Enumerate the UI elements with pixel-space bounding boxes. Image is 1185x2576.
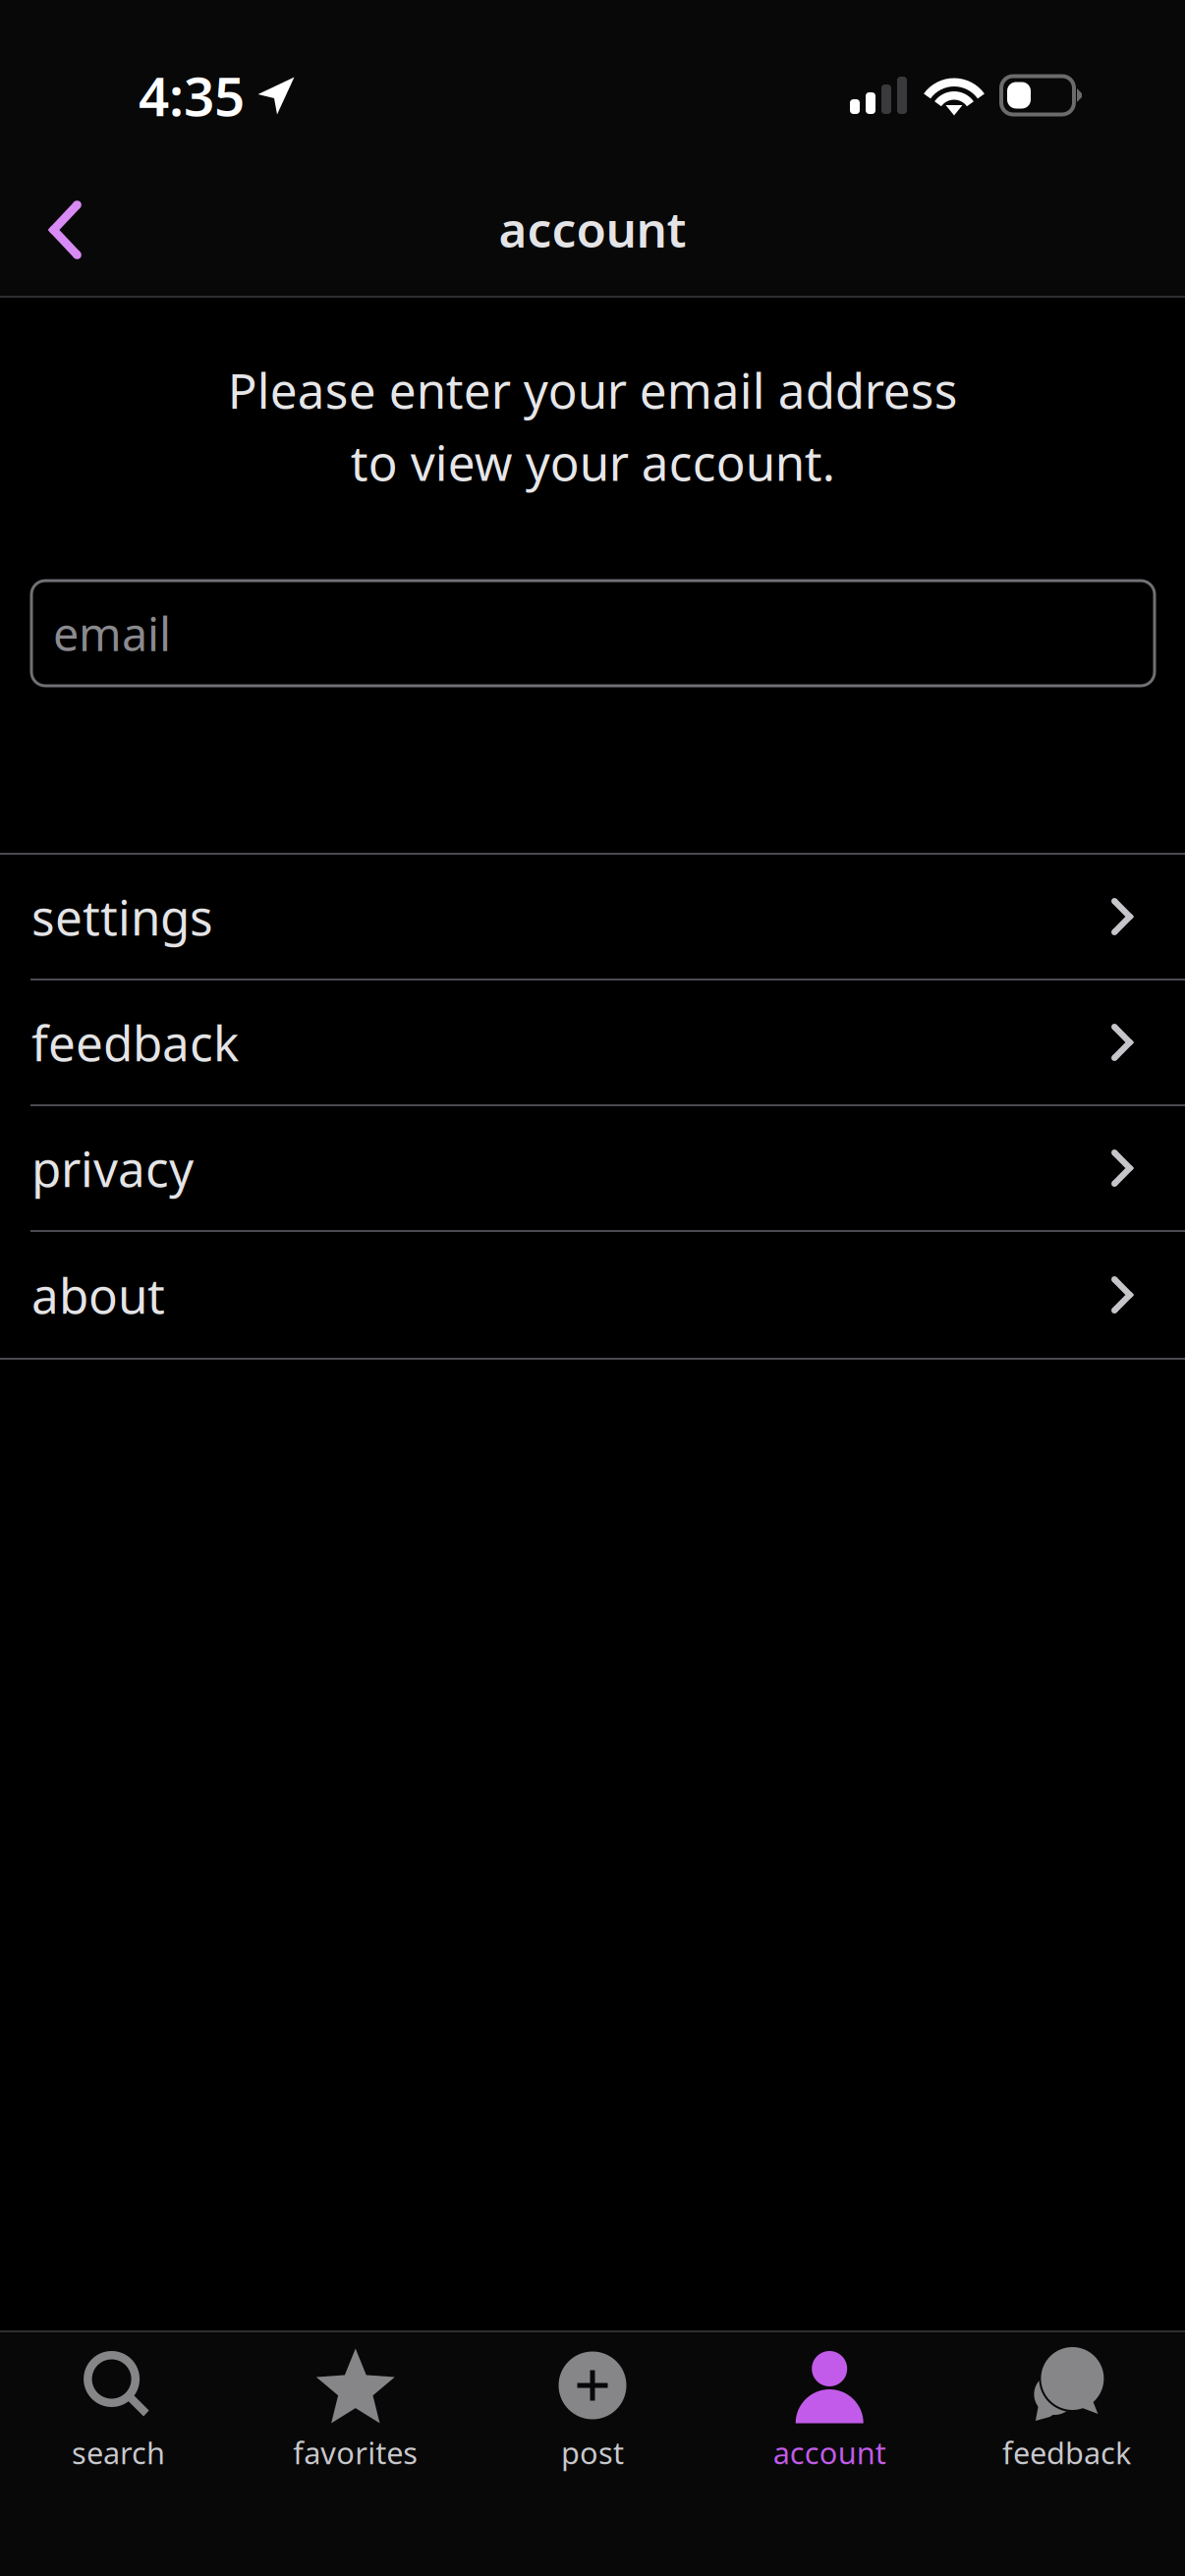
staticText: email <box>53 603 171 664</box>
staticText: settings <box>31 884 213 949</box>
staticText: search <box>72 2433 165 2473</box>
button[interactable]: feedback <box>948 2332 1185 2576</box>
button[interactable]: favorites <box>237 2332 474 2576</box>
button[interactable]: feedback <box>0 980 1185 1106</box>
button[interactable]: Back <box>18 181 113 279</box>
staticText: 4:35 <box>139 60 245 131</box>
staticText: account <box>773 2433 886 2473</box>
button[interactable]: search <box>0 2332 237 2576</box>
staticText: favorites <box>293 2433 418 2473</box>
staticText: privacy <box>31 1136 194 1200</box>
button[interactable]: account <box>711 2332 948 2576</box>
button[interactable]: privacy <box>0 1106 1185 1232</box>
staticText: about <box>31 1263 165 1327</box>
staticText: Please enter your email address to view … <box>227 358 958 494</box>
staticText: feedback <box>1002 2433 1131 2473</box>
staticText: account <box>499 196 686 261</box>
staticText: post <box>561 2433 624 2473</box>
button[interactable]: settings <box>0 855 1185 980</box>
button[interactable]: post <box>474 2332 711 2576</box>
staticText: feedback <box>31 1010 239 1075</box>
button[interactable]: about <box>0 1232 1185 1358</box>
